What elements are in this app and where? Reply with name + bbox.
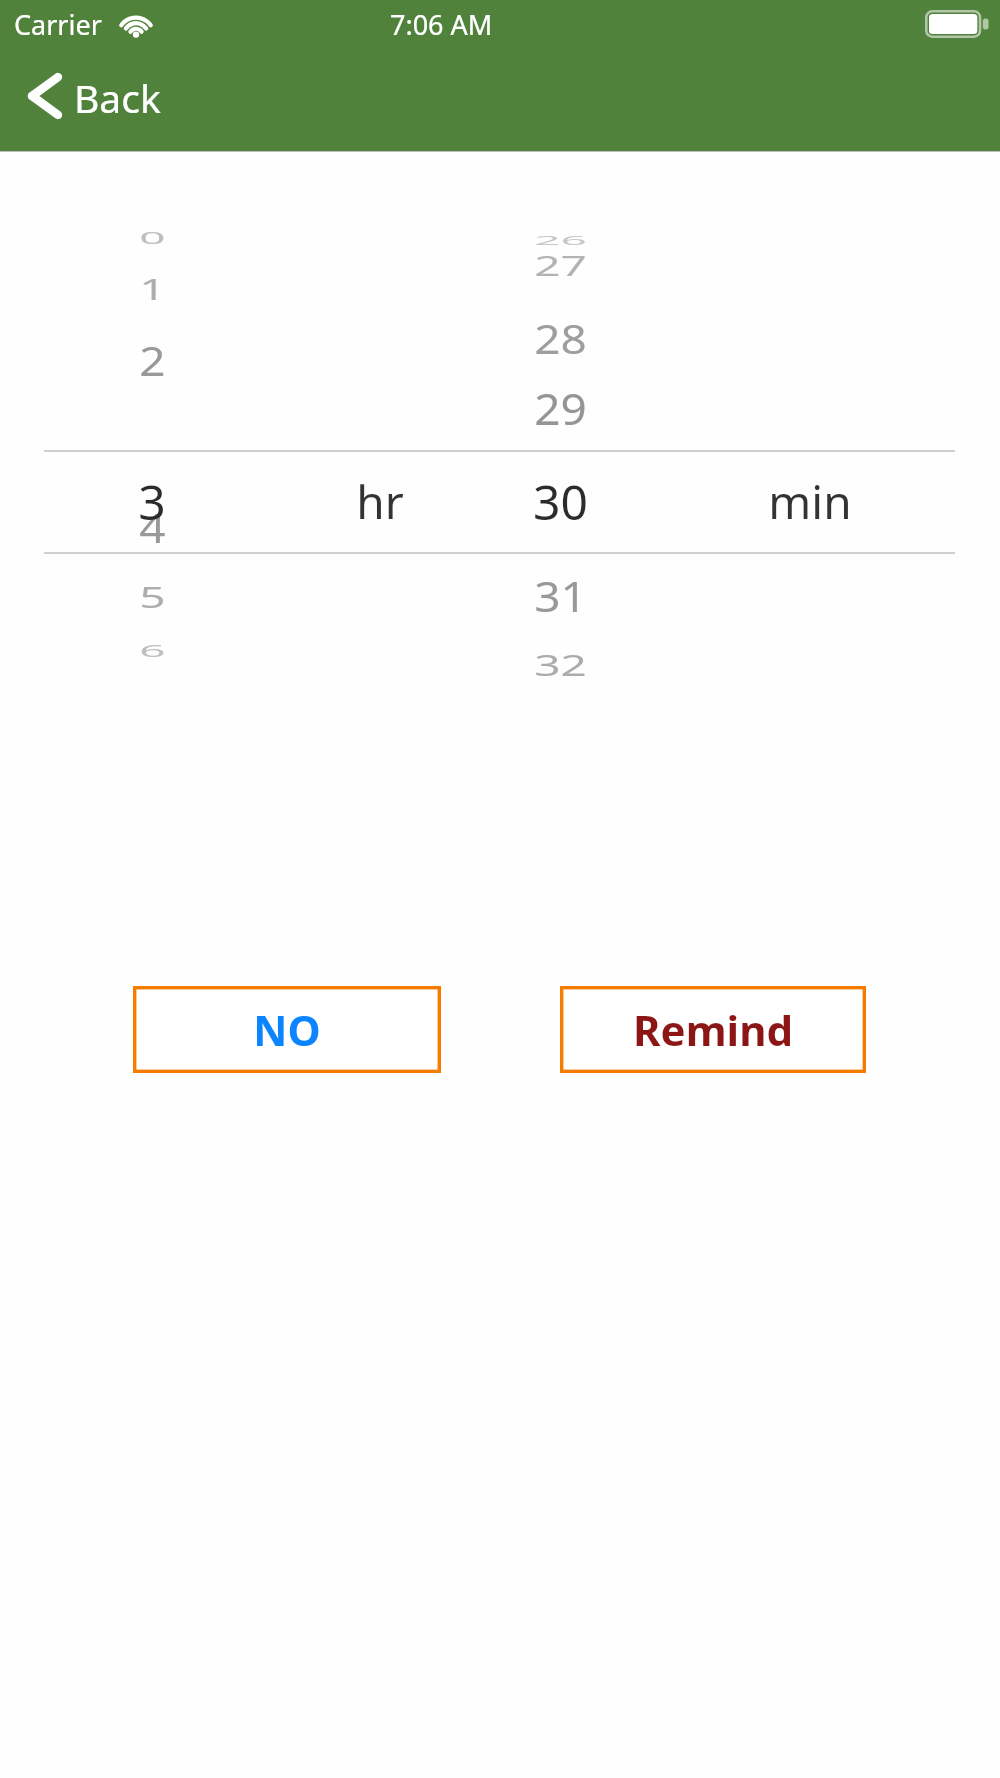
staticText: 5 <box>139 578 166 617</box>
staticText: 6 <box>139 641 166 662</box>
staticText: 7:06 AM <box>390 6 493 43</box>
button[interactable]: NO <box>133 986 441 1073</box>
staticText: hr <box>356 470 404 533</box>
staticText: Carrier <box>14 6 102 43</box>
button[interactable]: Minutes picker <box>470 180 955 680</box>
staticText: Remind <box>633 1001 793 1058</box>
staticText: 26 <box>534 232 587 249</box>
staticText: 4 <box>139 500 166 555</box>
staticText: 29 <box>534 378 587 439</box>
staticText: Back <box>74 71 161 124</box>
staticText: 31 <box>534 566 587 624</box>
staticText: 30 <box>533 469 588 534</box>
staticText: 32 <box>534 646 587 680</box>
staticText: min <box>768 470 852 533</box>
staticText: 2 <box>139 333 166 388</box>
staticText: 28 <box>534 311 587 366</box>
staticText: NO <box>253 1001 321 1058</box>
button[interactable]: Hours picker <box>44 180 464 680</box>
staticText: 3 <box>138 469 166 534</box>
staticText: 0 <box>139 228 166 249</box>
staticText: 27 <box>534 247 587 284</box>
staticText: 1 <box>139 270 166 309</box>
button[interactable]: Back <box>12 56 192 136</box>
button[interactable]: Remind <box>560 986 866 1073</box>
